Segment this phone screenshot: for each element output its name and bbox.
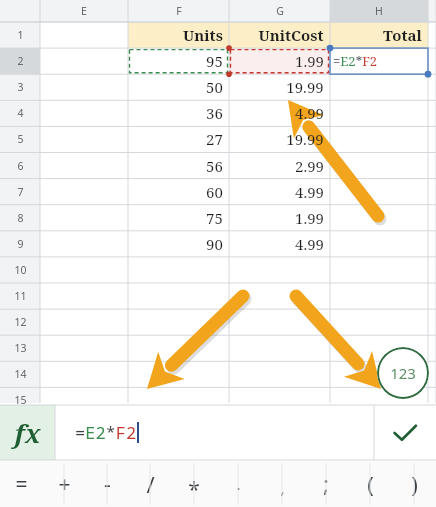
staticText: ; [323,470,329,499]
button[interactable]: 19.99 [229,74,324,100]
staticText: / [146,469,155,499]
button[interactable]: Row 11 [0,283,40,309]
staticText: 19.99 [286,77,324,97]
button[interactable]: 4.99 [229,179,324,205]
button[interactable]: Row 10 [0,257,40,283]
staticText: + [58,470,71,499]
button[interactable]: Row 16 [0,414,40,440]
staticText: 27 [206,129,223,149]
staticText: 1.99 [295,208,324,228]
button[interactable]: 36 [128,100,223,126]
staticText: UnitCost [258,25,324,45]
button[interactable]: 123 [377,347,429,399]
button[interactable]: Column E [40,0,128,22]
button[interactable]: 60 [128,179,223,205]
button[interactable]: - [86,461,129,507]
staticText: 4.99 [295,234,324,254]
button[interactable]: 50 [128,74,223,100]
button[interactable]: Total [330,22,422,48]
button[interactable]: ) [392,461,436,507]
button[interactable]: 95 [128,48,223,74]
button[interactable]: Row 17 [0,440,40,466]
staticText: 90 [206,234,223,254]
button[interactable]: 4.99 [229,100,324,126]
staticText: =E2*F2 [75,421,137,444]
button[interactable]: Row 1 [0,22,40,48]
button[interactable]: Units [128,22,223,48]
staticText: fx [14,415,41,450]
staticText: 4.99 [295,103,324,123]
button[interactable]: , [260,461,304,507]
button[interactable]: / [129,461,172,507]
staticText: 1 [17,28,24,42]
staticText: 13 [14,341,27,355]
button[interactable]: 90 [128,231,223,257]
button[interactable]: Row 5 [0,126,40,152]
button[interactable]: . [216,461,260,507]
staticText: 15 [14,393,27,407]
button[interactable]: 2.99 [229,153,324,179]
staticText: =E2*F2 [333,52,378,70]
button[interactable]: Row 3 [0,74,40,100]
button[interactable]: ; [304,461,348,507]
staticText: = [15,470,28,499]
staticText: 12 [14,315,27,329]
staticText: 36 [206,103,223,123]
button[interactable]: Column F [128,0,229,22]
button[interactable]: + [43,461,86,507]
staticText: 1.99 [295,51,324,71]
button[interactable]: Functions [0,405,55,460]
button[interactable]: Row 4 [0,100,40,126]
button[interactable]: 75 [128,205,223,231]
button[interactable]: Row 13 [0,335,40,361]
staticText: E [81,4,87,18]
staticText: Total [383,25,422,45]
button[interactable]: Row 15 [0,387,40,413]
button[interactable]: ( [348,461,392,507]
button[interactable]: 4.99 [229,231,324,257]
button[interactable]: =E2*F2 [75,405,374,460]
staticText: 19.99 [286,129,324,149]
staticText: 4.99 [295,182,324,202]
staticText: 7 [17,185,24,199]
button[interactable]: Column G [229,0,330,22]
button[interactable]: Row 9 [0,231,40,257]
button[interactable]: 1.99 [229,48,324,74]
button[interactable]: 27 [128,126,223,152]
staticText: 95 [206,51,223,71]
staticText: 75 [206,208,223,228]
staticText: 14 [14,367,27,381]
staticText: 3 [17,80,24,94]
button[interactable]: Accept formula [374,405,436,460]
staticText: - [104,470,111,499]
button[interactable]: Row 7 [0,179,40,205]
button[interactable]: =E2*F2 [333,48,427,74]
staticText: , [280,478,285,498]
button[interactable]: Row 8 [0,205,40,231]
button[interactable]: UnitCost [229,22,324,48]
staticText: 60 [206,182,223,202]
staticText: 9 [17,237,24,251]
button[interactable]: 19.99 [229,126,324,152]
button[interactable]: Row 14 [0,361,40,387]
staticText: 6 [17,159,24,173]
staticText: F [176,4,182,18]
button[interactable]: Column H [330,0,428,22]
button[interactable]: 56 [128,153,223,179]
staticText: G [276,4,284,18]
staticText: H [375,4,383,18]
button[interactable]: Row 6 [0,153,40,179]
staticText: * [188,475,200,504]
button[interactable]: Row 12 [0,309,40,335]
button[interactable]: Row 2 [0,48,40,74]
button[interactable]: 1.99 [229,205,324,231]
staticText: 2.99 [295,156,324,176]
staticText: 56 [206,156,223,176]
staticText: 16 [14,420,27,434]
staticText: 2 [17,54,24,68]
staticText: ) [411,469,418,499]
button[interactable]: = [0,461,43,507]
staticText: Units [183,25,223,45]
staticText: ( [367,469,374,499]
button[interactable]: * [172,461,216,507]
